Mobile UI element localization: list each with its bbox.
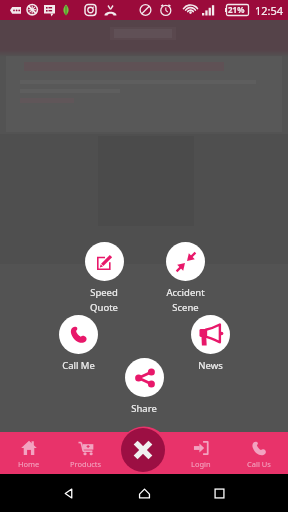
staticText: News xyxy=(198,359,223,372)
staticText: Speed Quote xyxy=(90,286,118,314)
staticText: Accident Scene xyxy=(166,286,205,314)
staticText: Share xyxy=(131,402,157,415)
button[interactable]: Home xyxy=(0,432,57,474)
staticText: Call Me xyxy=(62,359,95,372)
button[interactable] xyxy=(125,358,164,397)
button[interactable]: Close menu xyxy=(121,428,165,472)
staticText: Products xyxy=(70,459,102,469)
button[interactable] xyxy=(191,315,230,354)
other: Home xyxy=(138,487,151,500)
button[interactable]: Products xyxy=(57,432,114,474)
button[interactable]: Login xyxy=(172,432,230,474)
button[interactable]: Call Us xyxy=(230,432,288,474)
other: Back xyxy=(62,487,75,500)
staticText: 21% xyxy=(228,4,245,15)
staticText: Call Us xyxy=(247,459,271,469)
button[interactable] xyxy=(166,242,205,281)
staticText: Login xyxy=(191,459,211,469)
other: Recents xyxy=(213,487,226,500)
button[interactable] xyxy=(59,315,98,354)
staticText: Home xyxy=(18,459,40,469)
button[interactable] xyxy=(85,242,124,281)
staticText: 12:54 xyxy=(255,3,284,18)
